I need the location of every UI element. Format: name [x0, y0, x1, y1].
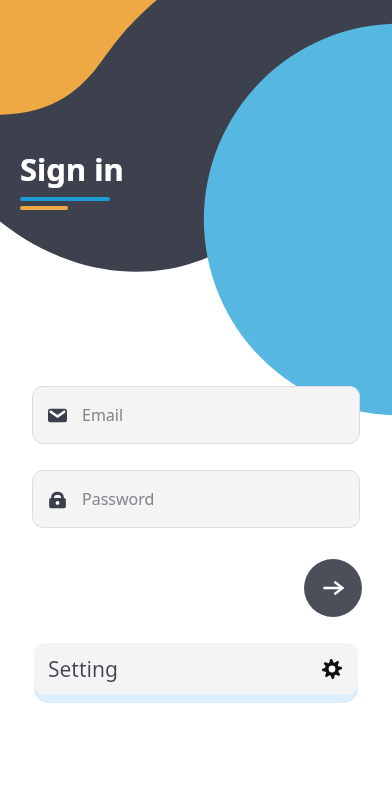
staticText: Sign in	[20, 148, 124, 190]
button[interactable]: Setting	[34, 643, 358, 695]
staticText: Setting	[48, 655, 322, 684]
button[interactable]: Password	[32, 470, 360, 528]
staticText: Password	[82, 488, 155, 510]
staticText: Email	[82, 404, 124, 426]
button[interactable]: Continue	[304, 559, 362, 617]
button[interactable]: Email	[32, 386, 360, 444]
